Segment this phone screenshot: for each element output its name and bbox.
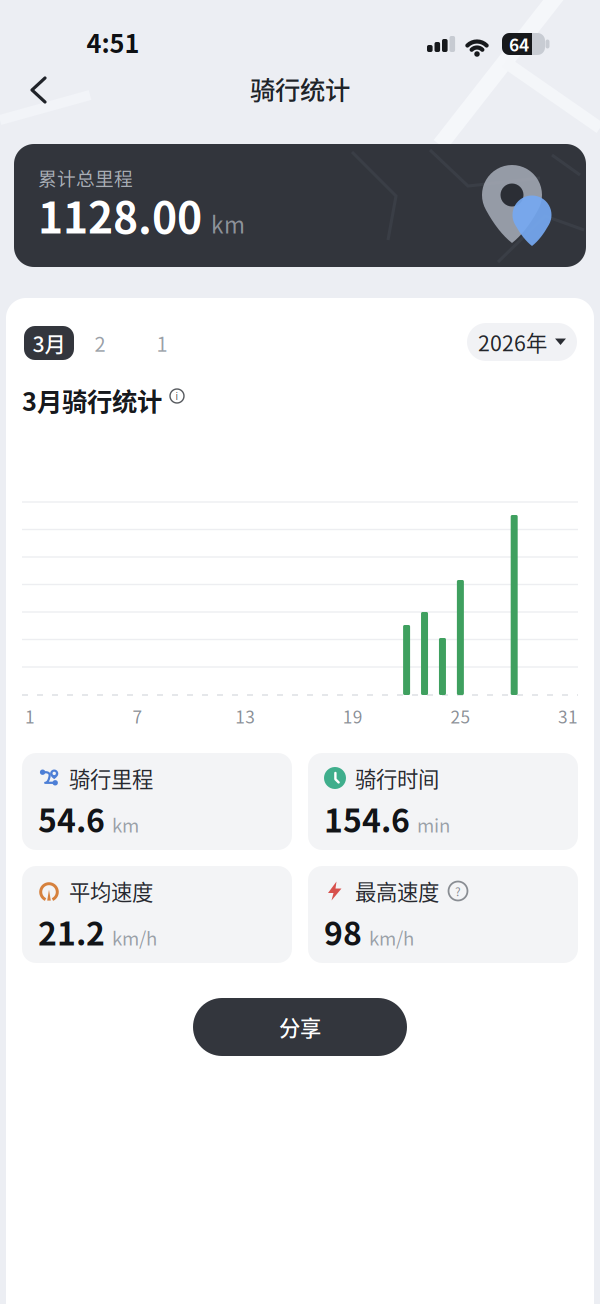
staticText: 25 [450,704,470,728]
staticText: km [211,208,245,240]
staticText: 19 [343,704,363,728]
staticText: km/h [369,924,414,951]
staticText: 最高速度 [355,876,439,906]
button[interactable]: 2026年 [467,323,577,361]
staticText: 3月骑行统计 [22,382,162,418]
button[interactable]: 最高速度说明 [448,881,468,901]
staticText: 2 [94,329,105,357]
staticText: 1128.00 [38,185,202,245]
staticText: 分享 [279,1012,321,1042]
staticText: 21.2 [38,909,105,954]
staticText: ? [455,882,461,899]
staticText: 1 [156,329,167,357]
staticText: 平均速度 [69,876,153,906]
button[interactable]: Back [16,68,60,112]
staticText: 98 [324,909,362,954]
staticText: 4:51 [86,24,139,60]
staticText: 64 [509,32,529,56]
staticText: 3月 [32,328,65,358]
staticText: 骑行里程 [69,763,153,793]
button[interactable]: 分享 [193,998,407,1056]
staticText: 31 [558,704,578,728]
staticText: 13 [235,704,255,728]
staticText: 1 [25,704,35,728]
staticText: 7 [133,704,143,728]
button[interactable]: 2 [80,326,120,360]
staticText: 154.6 [324,796,410,841]
staticText: i [175,389,178,403]
staticText: km [112,811,139,838]
staticText: min [417,811,450,838]
staticText: 54.6 [38,796,105,841]
button[interactable]: 3月 [24,326,74,360]
staticText: 骑行统计 [250,71,350,106]
staticText: 累计总里程 [38,164,133,191]
staticText: 骑行时间 [355,763,439,793]
staticText: 2026年 [478,327,547,357]
staticText: km/h [112,924,157,951]
button[interactable]: 关于统计 [169,388,185,404]
button[interactable]: 1 [142,326,182,360]
